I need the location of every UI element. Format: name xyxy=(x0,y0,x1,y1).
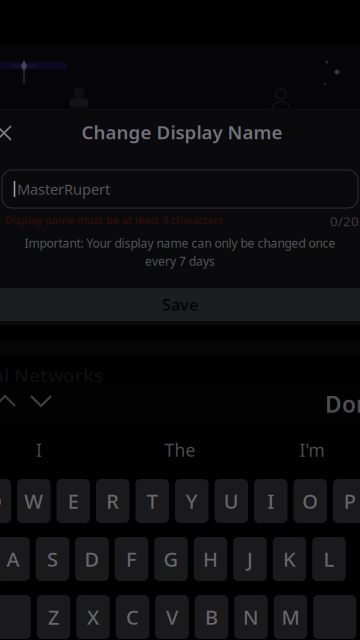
button[interactable]: D xyxy=(75,537,109,581)
button[interactable]: R xyxy=(96,479,129,523)
staticText: V xyxy=(166,604,178,630)
staticText: The xyxy=(164,438,195,461)
button[interactable]: Q xyxy=(0,479,11,523)
staticText: R xyxy=(106,488,119,514)
staticText: I xyxy=(267,488,274,514)
button[interactable]: S xyxy=(36,537,69,581)
staticText: I'm xyxy=(299,438,324,461)
button[interactable]: C xyxy=(116,595,149,639)
staticText: Important: Your display name can only be… xyxy=(24,235,335,251)
button[interactable]: F xyxy=(115,537,148,581)
staticText: L xyxy=(323,546,334,572)
staticText: MasterRupert xyxy=(17,179,110,199)
staticText: I xyxy=(36,438,42,461)
staticText: G xyxy=(163,546,178,572)
staticText: A xyxy=(6,546,19,572)
staticText: T xyxy=(147,488,158,514)
staticText: Social Networks xyxy=(0,363,103,387)
button[interactable]: A xyxy=(0,537,30,581)
button[interactable]: P xyxy=(333,479,360,523)
staticText: J xyxy=(247,546,253,572)
button[interactable]: V xyxy=(155,595,189,639)
staticText: Display name must be at least 3 characte… xyxy=(5,213,223,227)
staticText: K xyxy=(283,546,296,572)
button[interactable]: K xyxy=(273,537,306,581)
staticText: W xyxy=(24,488,43,514)
staticText: Change Display Name xyxy=(81,120,282,144)
staticText: Z xyxy=(48,604,59,630)
button[interactable]: Y xyxy=(175,479,208,523)
staticText: P xyxy=(344,488,356,514)
button[interactable]: M xyxy=(274,595,307,639)
button[interactable]: W xyxy=(17,479,50,523)
staticText: Y xyxy=(186,488,198,514)
button[interactable]: O xyxy=(293,479,327,523)
button[interactable]: Close xyxy=(0,120,17,146)
staticText: B xyxy=(205,604,218,630)
staticText: U xyxy=(224,488,239,514)
button[interactable]: X xyxy=(76,595,110,639)
button[interactable]: Z xyxy=(37,595,70,639)
button[interactable]: I xyxy=(254,479,287,523)
staticText: E xyxy=(68,488,79,514)
staticText: Q xyxy=(0,488,2,514)
button[interactable]: T xyxy=(135,479,169,523)
button[interactable]: J xyxy=(233,537,267,581)
button[interactable]: L xyxy=(312,537,346,581)
staticText: every 7 days xyxy=(145,253,215,269)
staticText: S xyxy=(47,546,58,572)
button[interactable]: G xyxy=(154,537,188,581)
staticText: O xyxy=(302,488,318,514)
staticText: C xyxy=(126,604,139,630)
staticText: M xyxy=(281,604,299,630)
staticText: N xyxy=(243,604,259,630)
button[interactable]: Done xyxy=(325,392,360,416)
staticText: Save xyxy=(162,294,198,315)
staticText: X xyxy=(87,604,99,630)
staticText: 0/20 xyxy=(330,212,359,230)
button[interactable]: Next field xyxy=(30,388,52,414)
staticText: D xyxy=(84,546,99,572)
button[interactable]: Previous field xyxy=(0,388,16,414)
staticText: Done xyxy=(325,389,360,419)
button[interactable]: U xyxy=(214,479,248,523)
button[interactable]: N xyxy=(234,595,268,639)
staticText: F xyxy=(126,546,137,572)
button[interactable]: E xyxy=(56,479,90,523)
button[interactable]: H xyxy=(194,537,227,581)
button[interactable]: B xyxy=(195,595,228,639)
staticText: H xyxy=(203,546,218,572)
